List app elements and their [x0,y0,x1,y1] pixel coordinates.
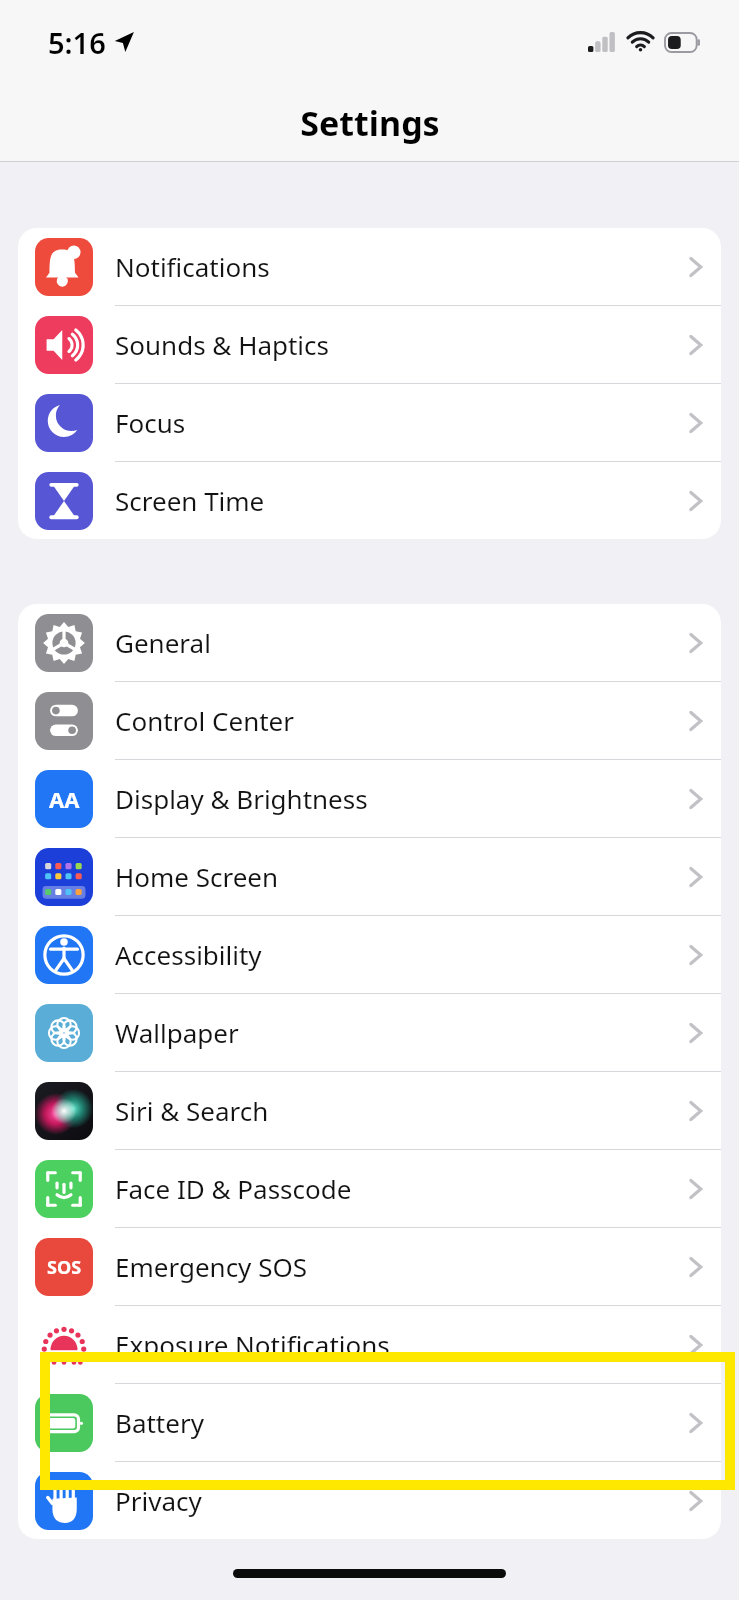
button[interactable]: SOS [18,1228,721,1306]
staticText: Exposure Notifications [115,1327,390,1362]
button[interactable]: Screen Time [18,462,721,539]
button[interactable]: Accessibility [18,916,721,994]
staticText: SOS [47,1255,82,1280]
button[interactable]: Privacy [18,1462,721,1539]
staticText: Display & Brightness [115,781,368,816]
staticText: Wallpaper [115,1015,239,1050]
button[interactable]: General [18,604,721,682]
button[interactable]: Sounds & Haptics [18,306,721,384]
staticText: Emergency SOS [115,1249,307,1284]
staticText: Privacy [115,1483,202,1518]
staticText: General [115,625,211,660]
staticText: Sounds & Haptics [115,327,330,362]
staticText: 5:16 [48,23,106,62]
button[interactable]: Face ID & Passcode [18,1150,721,1228]
staticText: Home Screen [115,859,279,894]
button[interactable]: Notifications [18,228,721,306]
staticText: Control Center [115,703,294,738]
staticText: Focus [115,405,186,440]
staticText: Face ID & Passcode [115,1171,352,1206]
staticText: Battery [115,1405,204,1440]
staticText: Accessibility [115,937,262,972]
staticText: Settings [300,100,440,146]
button[interactable]: Siri & Search [18,1072,721,1150]
staticText: Siri & Search [115,1093,269,1128]
button[interactable]: Focus [18,384,721,462]
button[interactable]: Home Screen [18,838,721,916]
staticText: AA [49,784,80,814]
button[interactable]: AA [18,760,721,838]
staticText: Screen Time [115,483,265,518]
button[interactable]: Control Center [18,682,721,760]
button[interactable]: Exposure Notifications [18,1306,721,1384]
button[interactable]: Wallpaper [18,994,721,1072]
staticText: Notifications [115,249,270,284]
button[interactable]: Battery [18,1384,721,1462]
